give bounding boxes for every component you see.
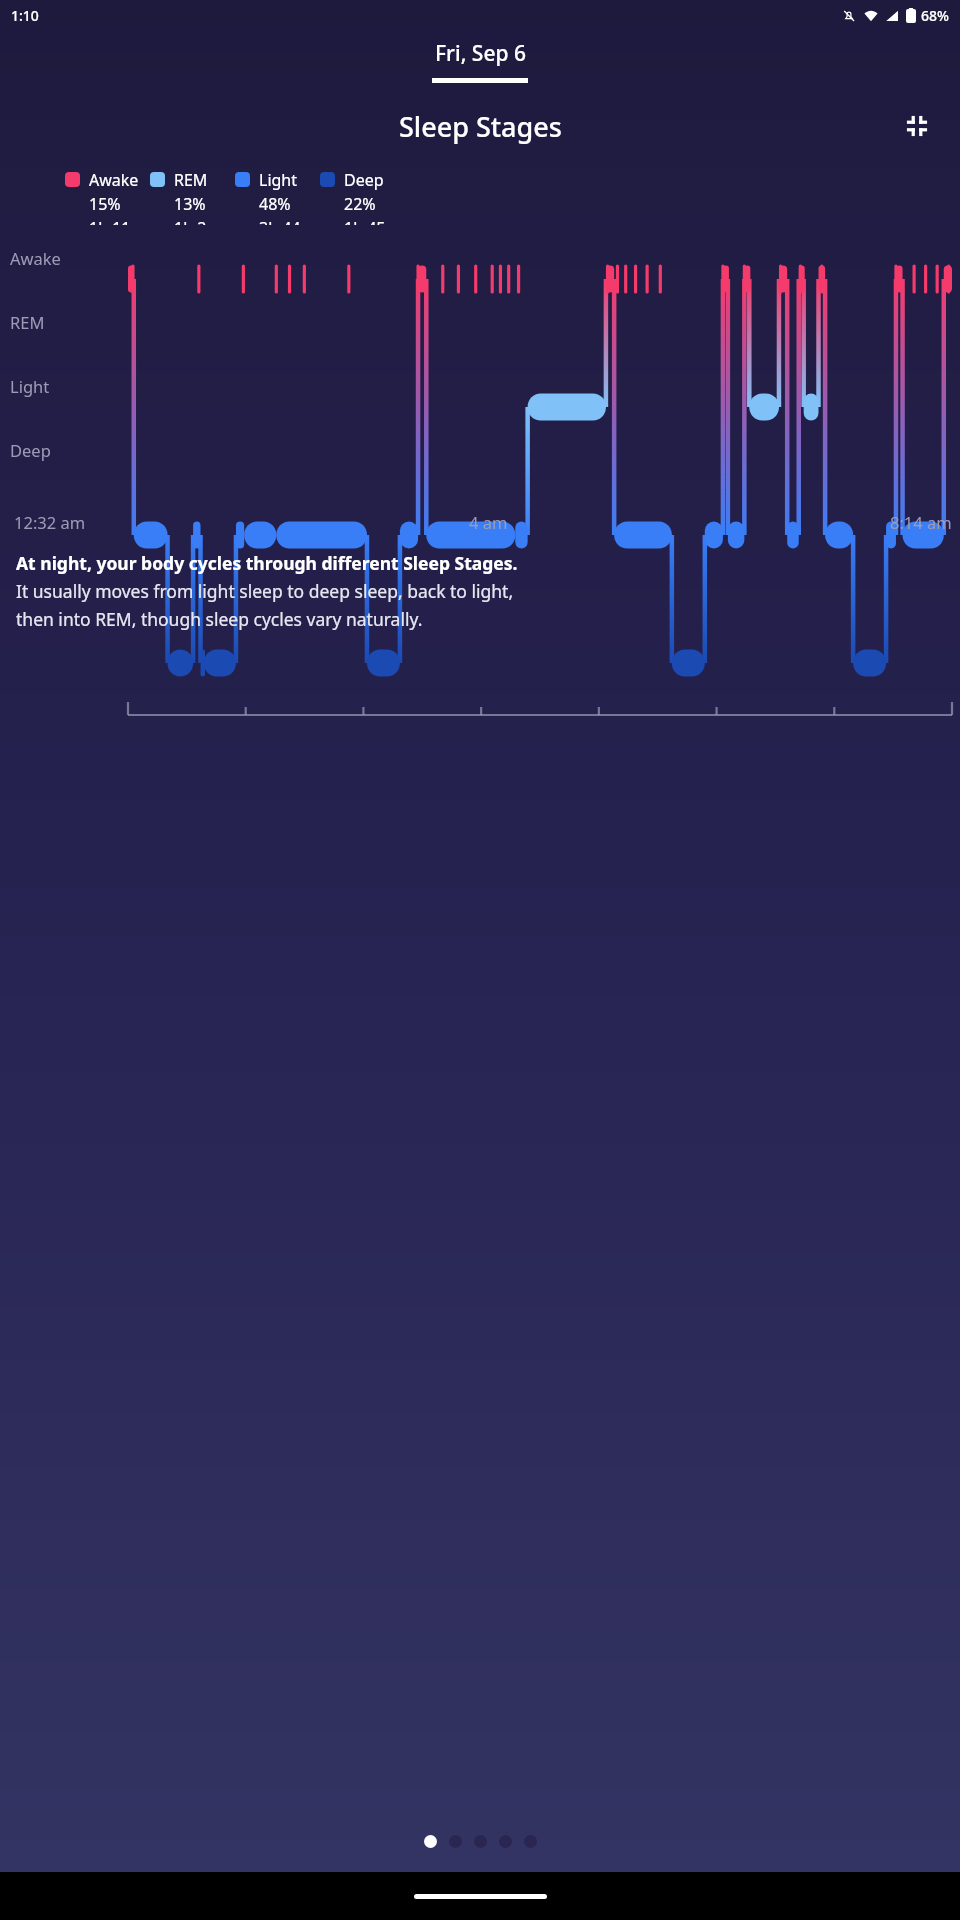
staticText: 12:32 am — [14, 511, 86, 533]
staticText: REM — [10, 311, 45, 333]
staticText: Fri, Sep 6 — [435, 39, 526, 68]
button[interactable] — [424, 1835, 437, 1848]
staticText: Deep — [344, 169, 384, 191]
staticText: Awake — [89, 169, 139, 191]
button[interactable] — [524, 1835, 537, 1848]
staticText: 8:14 am — [890, 511, 952, 533]
staticText: 3h 44m — [259, 217, 316, 225]
staticText: Sleep Stages — [399, 108, 562, 145]
staticText: Light — [10, 375, 50, 397]
staticText: 68% — [921, 6, 949, 25]
staticText: 1h 45m — [344, 217, 401, 225]
staticText: 4 am — [469, 511, 508, 533]
staticText: Light — [259, 169, 298, 191]
button[interactable]: Fri, Sep 6 — [432, 31, 528, 83]
staticText: REM — [174, 169, 208, 191]
button[interactable]: Collapse chart — [894, 103, 940, 149]
staticText: Deep — [10, 439, 51, 461]
button[interactable] — [474, 1835, 487, 1848]
staticText: 1:10 — [11, 6, 39, 25]
button[interactable] — [449, 1835, 462, 1848]
staticText: then into REM, though sleep cycles vary … — [16, 607, 423, 631]
staticText: 22% — [344, 193, 376, 215]
staticText: 15% — [89, 193, 121, 215]
staticText: 13% — [174, 193, 206, 215]
staticText: 48% — [259, 193, 291, 215]
button[interactable] — [499, 1835, 512, 1848]
staticText: It usually moves from light sleep to dee… — [16, 579, 514, 603]
staticText: Awake — [10, 247, 61, 269]
staticText: 1h 11m — [89, 217, 146, 225]
staticText: At night, your body cycles through diffe… — [16, 551, 518, 575]
staticText: 1h 2m — [174, 217, 222, 225]
